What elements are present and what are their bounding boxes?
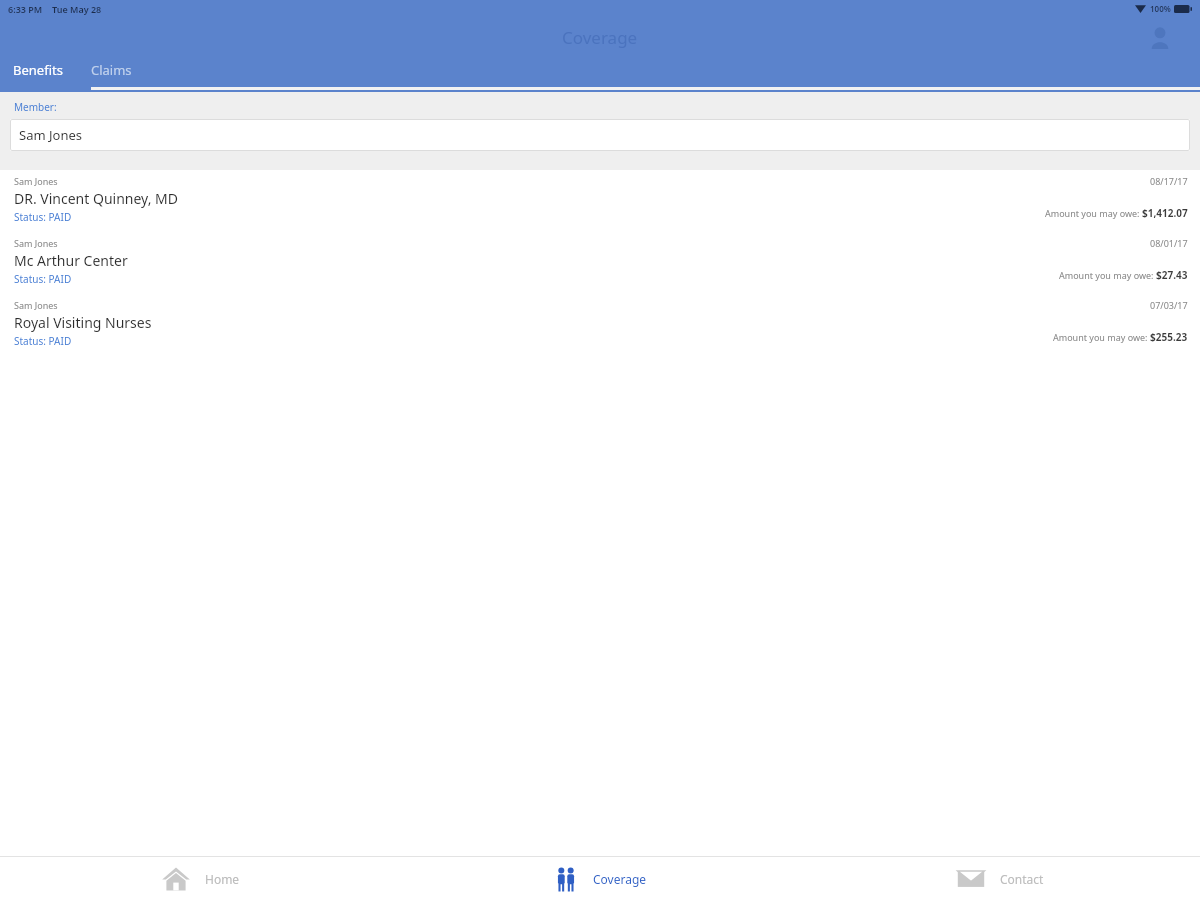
- button[interactable]: Contact: [800, 857, 1200, 900]
- button[interactable]: Benefits: [13, 58, 63, 92]
- staticText: DR. Vincent Quinney, MD: [14, 189, 178, 208]
- staticText: Amount you may owe:: [1053, 331, 1150, 343]
- staticText: Coverage: [562, 26, 638, 49]
- staticText: Royal Visiting Nurses: [14, 313, 152, 332]
- staticText: 08/17/17: [1150, 175, 1188, 187]
- staticText: $255.23: [1150, 330, 1188, 344]
- staticText: Amount you may owe:: [1045, 207, 1142, 219]
- staticText: Sam Jones: [19, 126, 82, 144]
- staticText: Sam Jones: [14, 237, 58, 249]
- staticText: 08/01/17: [1150, 237, 1188, 249]
- button[interactable]: Claims: [91, 58, 1200, 92]
- staticText: Tue May 28: [52, 3, 102, 15]
- button[interactable]: Profile: [1142, 20, 1178, 56]
- staticText: Claims: [91, 61, 132, 79]
- button[interactable]: Sam Jones: [0, 170, 1200, 232]
- staticText: Contact: [1000, 871, 1044, 887]
- staticText: Sam Jones: [14, 175, 58, 187]
- staticText: $27.43: [1156, 268, 1188, 282]
- staticText: Status: PAID: [14, 210, 72, 224]
- staticText: Amount you may owe:: [1059, 269, 1156, 281]
- button[interactable]: Home: [0, 857, 400, 900]
- button[interactable]: Coverage: [400, 857, 800, 900]
- staticText: Home: [205, 871, 240, 887]
- staticText: 6:33 PM: [8, 3, 43, 15]
- staticText: Benefits: [13, 61, 63, 79]
- staticText: $1,412.07: [1142, 206, 1188, 220]
- button[interactable]: Sam Jones: [0, 294, 1200, 356]
- staticText: 100%: [1150, 3, 1171, 14]
- staticText: Sam Jones: [14, 299, 58, 311]
- staticText: Status: PAID: [14, 334, 72, 348]
- staticText: Member:: [14, 100, 57, 114]
- button[interactable]: Sam Jones: [10, 119, 1190, 151]
- staticText: Coverage: [593, 871, 647, 887]
- button[interactable]: Sam Jones: [0, 232, 1200, 294]
- staticText: Status: PAID: [14, 272, 72, 286]
- staticText: Mc Arthur Center: [14, 251, 128, 270]
- staticText: 07/03/17: [1150, 299, 1188, 311]
